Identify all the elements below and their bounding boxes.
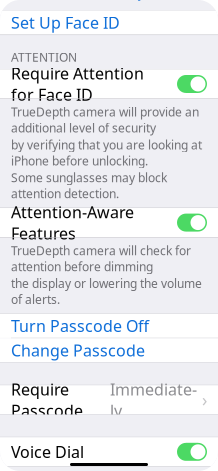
- staticText: Voice Dial: [11, 441, 84, 462]
- staticText: Require Attention for Face ID: [11, 63, 144, 105]
- staticText: Immediately: [110, 379, 197, 421]
- button[interactable]: Set Up Face ID: [0, 10, 218, 34]
- staticText: TrueDepth camera will provide an additio…: [11, 104, 199, 136]
- button[interactable]: Require Passcode: [0, 385, 218, 414]
- staticText: Change Passcode: [11, 340, 145, 361]
- staticText: Attention-Aware Features: [11, 201, 134, 244]
- staticText: by verifying that you are looking at iPh…: [11, 137, 202, 169]
- staticText: Some sunglasses may block attention dete…: [11, 170, 167, 202]
- button[interactable]: Turn Passcode Off: [0, 314, 218, 338]
- button[interactable]: Voice Dial: [0, 437, 218, 466]
- staticText: ATTENTION: [11, 49, 77, 65]
- button[interactable]: Attention-Aware Features: [0, 208, 218, 237]
- button[interactable]: Require Attention for Face ID: [0, 69, 218, 98]
- staticText: ›: [202, 388, 207, 411]
- staticText: Require Passcode: [11, 379, 83, 421]
- staticText: About Face ID & Privacy...: [11, 0, 153, 1]
- staticText: TrueDepth camera will check for attentio…: [11, 243, 191, 274]
- staticText: Set Up Face ID: [11, 12, 120, 33]
- staticText: Turn Passcode Off: [11, 315, 149, 336]
- button[interactable]: Change Passcode: [0, 338, 218, 362]
- button[interactable]: About Face ID & Privacy...: [11, 0, 153, 1]
- staticText: the display or lowering the volume of al…: [11, 275, 202, 307]
